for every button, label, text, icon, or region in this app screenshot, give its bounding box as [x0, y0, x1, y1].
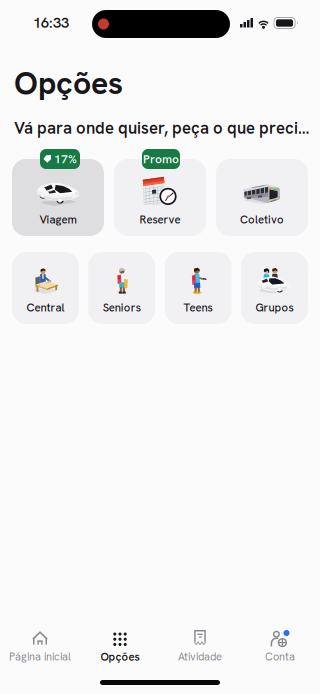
button[interactable]: Promo — [142, 149, 180, 169]
button[interactable]: Viagem — [12, 159, 104, 236]
staticText: Opções — [100, 649, 139, 664]
button[interactable]: Grupos — [241, 252, 308, 324]
button[interactable]: Central — [12, 252, 79, 324]
staticText: Grupos — [255, 300, 293, 315]
button[interactable]: 17% — [40, 149, 80, 169]
staticText: Central — [26, 300, 64, 315]
staticText: 17% — [54, 151, 77, 167]
button[interactable]: Seniors — [88, 252, 155, 324]
staticText: Opções — [14, 62, 123, 104]
staticText: Promo — [143, 151, 179, 167]
staticText: Viagem — [39, 212, 76, 227]
button[interactable]: Reserve — [114, 159, 206, 236]
button[interactable]: Coletivo — [216, 159, 308, 236]
button[interactable]: Conta — [240, 630, 320, 676]
button[interactable]: Atividade — [160, 630, 240, 676]
staticText: Vá para onde quiser, peça o que preci… — [14, 117, 309, 139]
staticText: Coletivo — [240, 212, 284, 227]
staticText: Página inicial — [9, 649, 71, 664]
staticText: Conta — [265, 649, 295, 664]
button[interactable]: Opções — [80, 630, 160, 676]
staticText: 16:33 — [33, 13, 69, 32]
button[interactable]: Página inicial — [0, 630, 80, 676]
staticText: Atividade — [178, 649, 222, 664]
staticText: Reserve — [139, 212, 180, 227]
staticText: Teens — [184, 300, 213, 315]
staticText: Seniors — [103, 300, 141, 315]
button[interactable]: Teens — [165, 252, 232, 324]
